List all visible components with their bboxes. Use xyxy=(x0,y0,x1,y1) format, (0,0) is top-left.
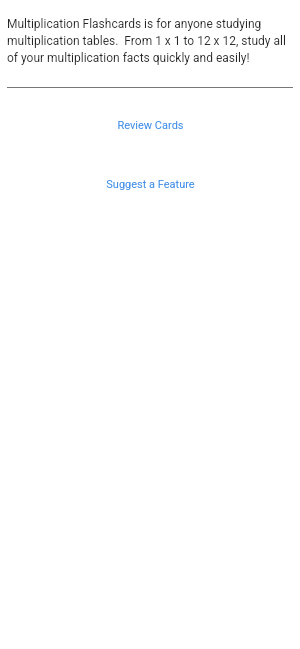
button[interactable]: Suggest a Feature xyxy=(92,173,209,196)
button[interactable]: Review Cards xyxy=(103,114,198,137)
staticText: Multiplication Flashcards is for anyone … xyxy=(7,17,297,65)
